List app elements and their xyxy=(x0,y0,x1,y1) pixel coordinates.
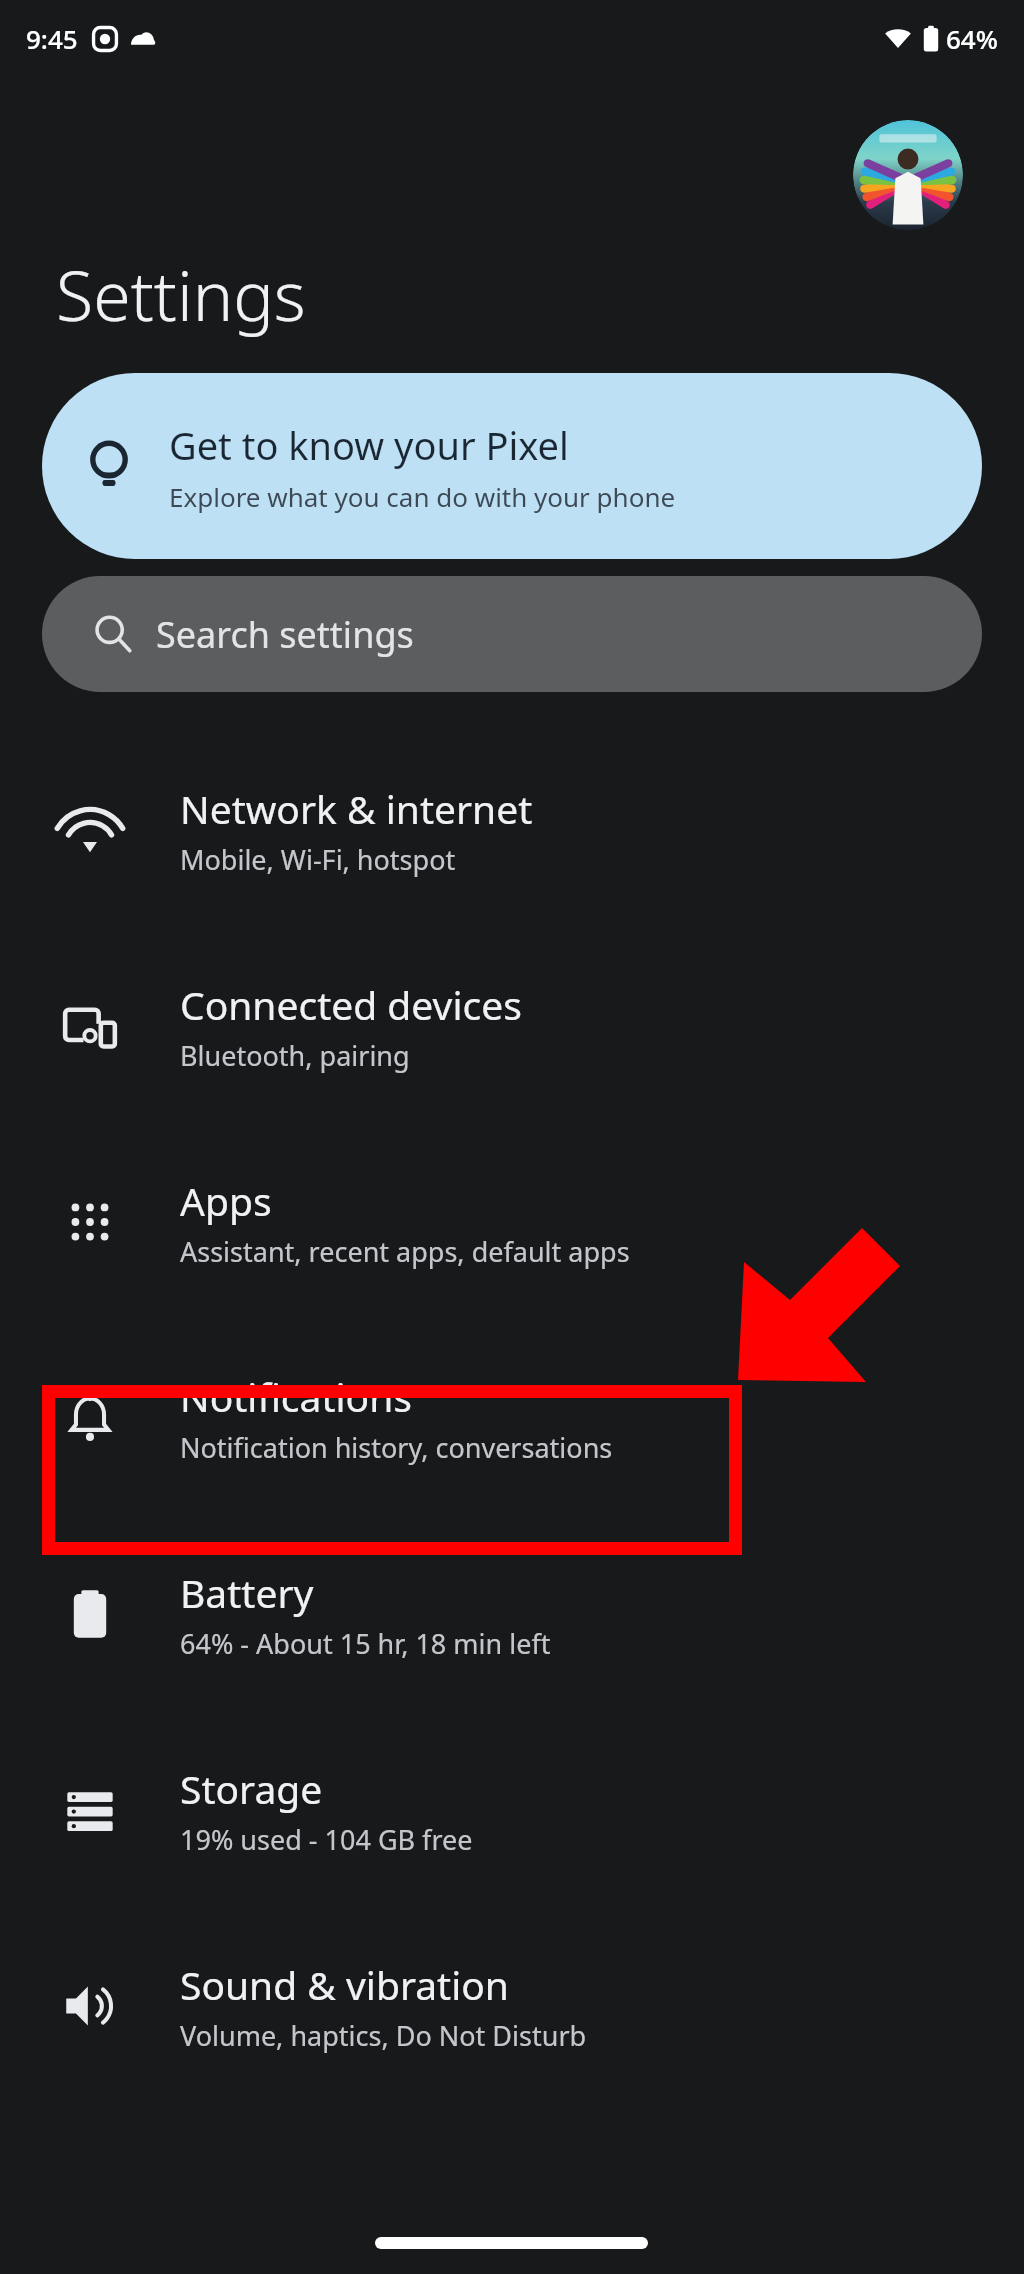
button[interactable]: Connected devices xyxy=(0,928,1024,1124)
staticText: 9:45 xyxy=(26,21,78,56)
staticText: 64% - About 15 hr, 18 min left xyxy=(180,1625,551,1662)
staticText: Battery xyxy=(180,1566,314,1619)
staticText: Bluetooth, pairing xyxy=(180,1037,410,1074)
button[interactable]: Get to know your Pixel xyxy=(42,373,982,559)
staticText: Notification history, conversations xyxy=(180,1429,613,1466)
button[interactable]: Account profile xyxy=(853,120,963,230)
staticText: 64% xyxy=(946,21,998,56)
staticText: Connected devices xyxy=(180,978,522,1031)
staticText: Mobile, Wi-Fi, hotspot xyxy=(180,841,456,878)
staticText: Search settings xyxy=(156,610,414,659)
staticText: Sound & vibration xyxy=(180,1958,509,2011)
button[interactable]: Sound & vibration xyxy=(0,1908,1024,2104)
staticText: Explore what you can do with your phone xyxy=(169,479,676,514)
button[interactable]: Apps xyxy=(0,1124,1024,1320)
button[interactable]: Search settings xyxy=(42,576,982,692)
staticText: Storage xyxy=(180,1762,323,1815)
button[interactable]: Battery xyxy=(0,1516,1024,1712)
staticText: 19% used - 104 GB free xyxy=(180,1821,473,1858)
staticText: Apps xyxy=(180,1174,272,1227)
staticText: Notifications xyxy=(180,1370,412,1423)
staticText: Settings xyxy=(56,248,306,341)
staticText: Assistant, recent apps, default apps xyxy=(180,1233,630,1270)
button[interactable]: Network & internet xyxy=(0,732,1024,928)
staticText: Network & internet xyxy=(180,782,533,835)
button[interactable]: Notifications xyxy=(0,1320,1024,1516)
staticText: Volume, haptics, Do Not Disturb xyxy=(180,2017,587,2054)
button[interactable]: Storage xyxy=(0,1712,1024,1908)
staticText: Get to know your Pixel xyxy=(169,419,569,471)
